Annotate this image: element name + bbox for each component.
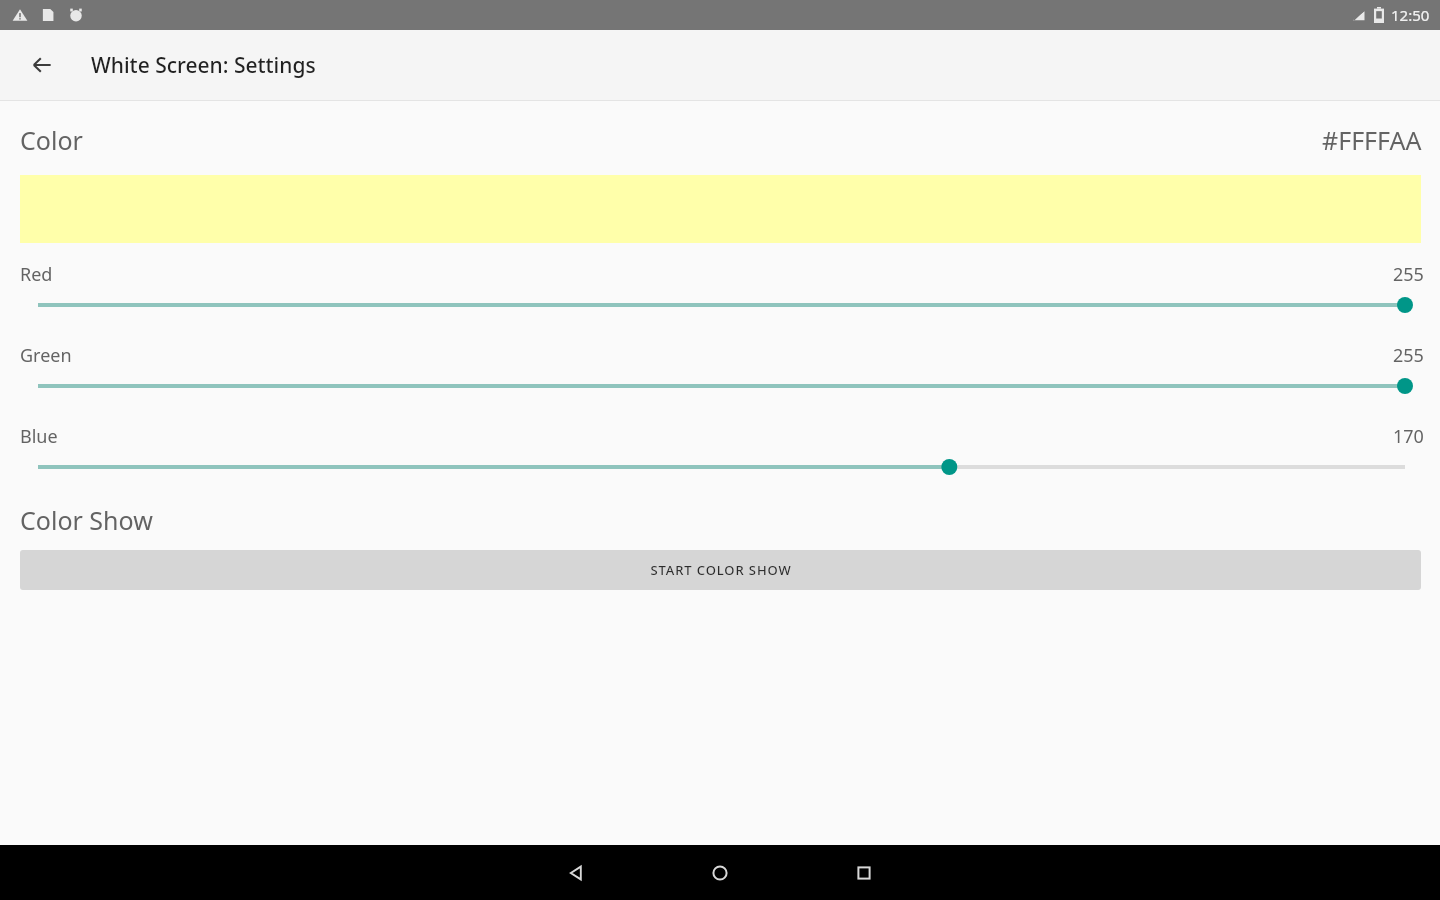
staticText: White Screen: Settings [91, 51, 316, 80]
button[interactable]: Recent apps [842, 851, 886, 895]
staticText: Blue [20, 424, 58, 449]
staticText: 170 [1393, 424, 1424, 449]
staticText: Color Show [20, 503, 153, 537]
staticText: 255 [1393, 262, 1424, 287]
button[interactable]: START COLOR SHOW [20, 550, 1421, 590]
staticText: Color [20, 123, 83, 157]
staticText: Red [20, 262, 53, 287]
staticText: Green [20, 343, 72, 368]
button[interactable] [0, 456, 1440, 478]
staticText: #FFFFAA [1322, 123, 1422, 157]
staticText: START COLOR SHOW [650, 561, 792, 579]
button[interactable] [0, 375, 1440, 397]
button[interactable] [0, 294, 1440, 316]
staticText: 12:50 [1391, 5, 1430, 25]
staticText: 255 [1393, 343, 1424, 368]
button[interactable]: Back [18, 41, 66, 89]
button[interactable]: Back [554, 851, 598, 895]
button[interactable]: Home [698, 851, 742, 895]
